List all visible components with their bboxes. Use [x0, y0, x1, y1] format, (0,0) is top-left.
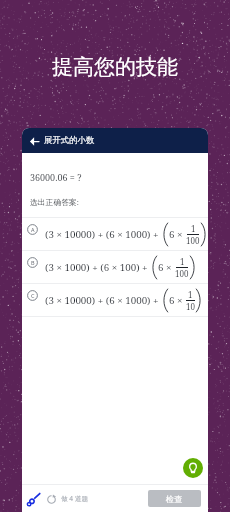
button[interactable]: Hint	[183, 458, 203, 478]
button[interactable]: Back	[26, 133, 42, 149]
button[interactable]: B	[22, 251, 208, 283]
staticText: 做 4 道题	[61, 494, 88, 503]
staticText: 36000.06 = ?	[30, 171, 82, 183]
staticText: A	[31, 226, 35, 233]
staticText: 检查	[166, 494, 182, 504]
staticText: 6 ×	[169, 294, 186, 307]
button[interactable]: Refresh	[44, 492, 58, 506]
staticText: 10	[186, 301, 195, 312]
staticText: 100	[175, 268, 189, 279]
staticText: 提高您的技能	[0, 54, 230, 80]
staticText: 100	[186, 235, 200, 246]
staticText: 展开式的小数	[44, 135, 95, 146]
staticText: 6 ×	[158, 261, 175, 274]
staticText: (3 × 10000) + (6 × 1000) +	[45, 294, 162, 307]
staticText: (3 × 10000) + (6 × 1000) +	[45, 228, 162, 241]
staticText: 1	[191, 223, 196, 234]
staticText: 1	[188, 289, 193, 300]
button[interactable]: 检查	[148, 490, 201, 507]
staticText: C	[31, 292, 35, 299]
staticText: 1	[180, 256, 185, 267]
button[interactable]: A	[22, 218, 208, 250]
staticText: (3 × 1000) + (6 × 100) +	[45, 261, 151, 274]
button[interactable]: Energy	[24, 490, 42, 508]
staticText: 6 ×	[169, 228, 186, 241]
staticText: 选出正确答案:	[30, 197, 79, 208]
button[interactable]: C	[22, 284, 208, 316]
staticText: B	[31, 259, 35, 266]
